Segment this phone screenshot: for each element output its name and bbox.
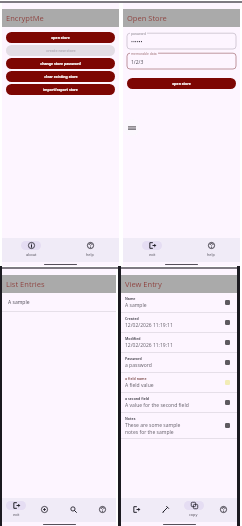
button[interactable]: Copy Created (223, 318, 232, 327)
button[interactable]: Copy Name (223, 298, 232, 307)
button[interactable]: help (181, 238, 240, 262)
staticText: clear existing store (44, 74, 78, 79)
button[interactable]: Exit (121, 498, 150, 522)
button[interactable]: Add (30, 498, 58, 522)
staticText: help (86, 252, 94, 257)
button[interactable]: Copy Modified (223, 338, 232, 347)
staticText: Created (125, 316, 139, 321)
staticText: Open Store (127, 13, 167, 23)
button[interactable]: Copy a field name (223, 378, 232, 387)
staticText: import/export store (43, 87, 78, 92)
button[interactable]: Keyboard (123, 119, 140, 136)
button[interactable]: Copy Password (223, 358, 232, 367)
button[interactable]: help (60, 238, 119, 262)
button[interactable]: Help (87, 498, 116, 522)
button[interactable]: change store password (6, 58, 115, 69)
button[interactable]: Copy a second field (223, 398, 232, 407)
button[interactable]: open store (6, 32, 115, 43)
staticText: Name (125, 296, 136, 301)
staticText: exit (149, 252, 156, 257)
staticText: View Entry (125, 279, 162, 289)
button[interactable]: a second field (121, 393, 237, 412)
staticText: Notes (125, 416, 136, 421)
button[interactable]: Search (58, 498, 87, 522)
button[interactable]: Edit (150, 498, 179, 522)
staticText: A sample (8, 299, 30, 306)
staticText: open store (172, 81, 191, 86)
staticText: A value for the second field (125, 402, 189, 409)
button[interactable]: Created (121, 313, 237, 332)
staticText: password (131, 31, 146, 35)
staticText: These are some sample notes for the samp… (125, 422, 181, 435)
button[interactable]: copy (179, 498, 208, 522)
button[interactable]: Notes (121, 413, 237, 438)
staticText: A field value (125, 382, 154, 389)
staticText: a password (125, 362, 152, 369)
button[interactable]: about (2, 238, 60, 262)
staticText: a second field (125, 396, 149, 401)
button[interactable]: A sample (2, 293, 116, 311)
button[interactable]: Password (121, 353, 237, 372)
button[interactable]: a field name (121, 373, 237, 392)
button[interactable]: Copy Notes (223, 421, 232, 430)
staticText: 12/02/2026 11:19:11 (125, 322, 173, 329)
staticText: Modified (125, 336, 141, 341)
button[interactable]: exit (2, 498, 30, 522)
staticText: a field name (125, 376, 147, 381)
staticText: 1/2/3 (131, 59, 144, 66)
staticText: 12/02/2026 11:19:11 (125, 342, 173, 349)
staticText: Password (125, 356, 142, 361)
button[interactable]: Modified (121, 333, 237, 352)
staticText: EncryptMe (6, 13, 44, 23)
staticText: help (207, 252, 215, 257)
staticText: copy (189, 512, 198, 517)
staticText: •••••• (131, 39, 143, 46)
staticText: create new store (46, 48, 76, 53)
staticText: exit (13, 512, 20, 517)
button[interactable]: open store (127, 78, 236, 89)
staticText: change store password (40, 61, 81, 66)
button[interactable]: import/export store (6, 84, 115, 95)
staticText: A sample (125, 302, 147, 309)
staticText: List Entries (6, 279, 45, 289)
button[interactable]: Name (121, 293, 237, 312)
button[interactable]: create new store (6, 45, 115, 56)
staticText: about (26, 252, 37, 257)
button[interactable]: exit (123, 238, 181, 262)
staticText: open store (51, 35, 70, 40)
staticText: memorable data (131, 51, 157, 55)
button[interactable]: Help (208, 498, 237, 522)
button[interactable]: clear existing store (6, 71, 115, 82)
